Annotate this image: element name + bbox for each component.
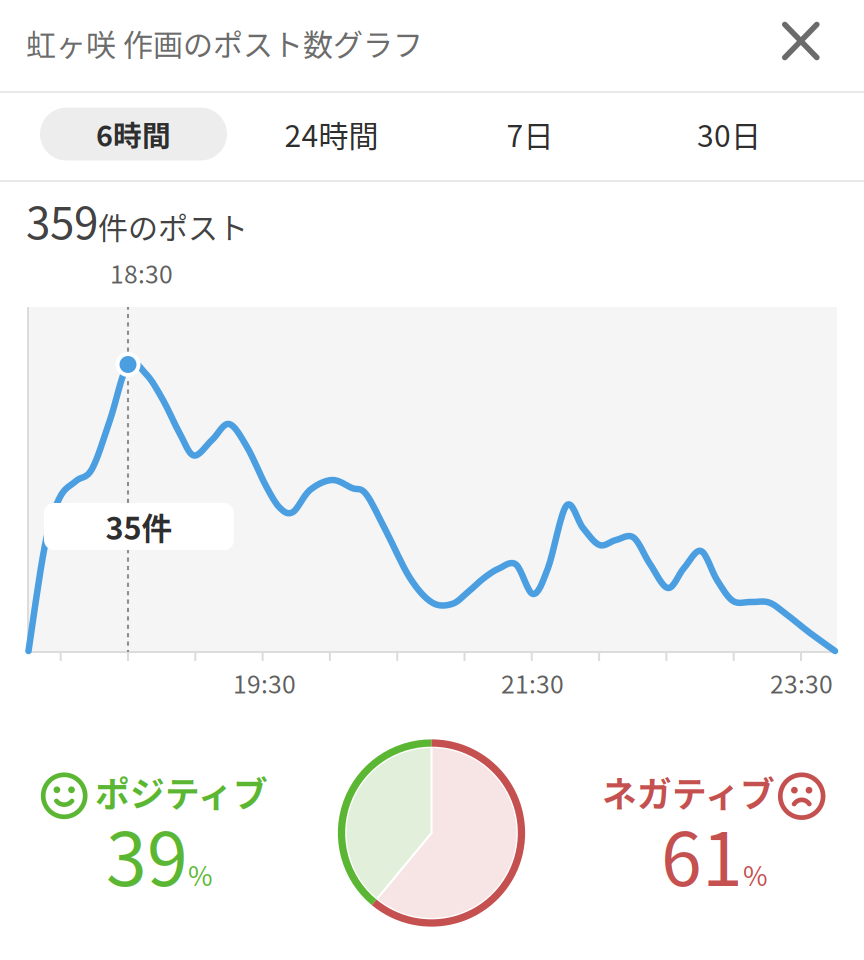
staticText: % — [188, 855, 213, 894]
staticText: 30日 — [697, 112, 761, 156]
staticText: 21:30 — [501, 665, 564, 701]
staticText: 18:30 — [110, 255, 173, 291]
staticText: 61 — [661, 801, 743, 907]
staticText: 35件 — [105, 504, 172, 549]
staticText: 23:30 — [770, 665, 833, 701]
button[interactable]: 6時間 — [0, 0, 864, 960]
staticText: ポジティブ — [95, 767, 268, 817]
staticText: 24時間 — [284, 112, 378, 156]
button[interactable]: 7日 — [0, 0, 864, 960]
button[interactable]: 24時間 — [0, 0, 864, 960]
staticText: 7日 — [506, 112, 553, 156]
staticText: ネガティブ — [602, 767, 775, 817]
button[interactable]: 閉じる — [0, 0, 864, 960]
staticText: 虹ヶ咲 作画のポスト数グラフ — [26, 21, 423, 64]
button[interactable]: 30日 — [0, 0, 864, 960]
staticText: 39 — [106, 801, 188, 907]
staticText: 19:30 — [233, 665, 296, 701]
staticText: 件のポスト — [98, 204, 248, 248]
staticText: 359 — [26, 188, 98, 252]
staticText: 6時間 — [96, 113, 171, 155]
staticText: % — [743, 855, 768, 894]
